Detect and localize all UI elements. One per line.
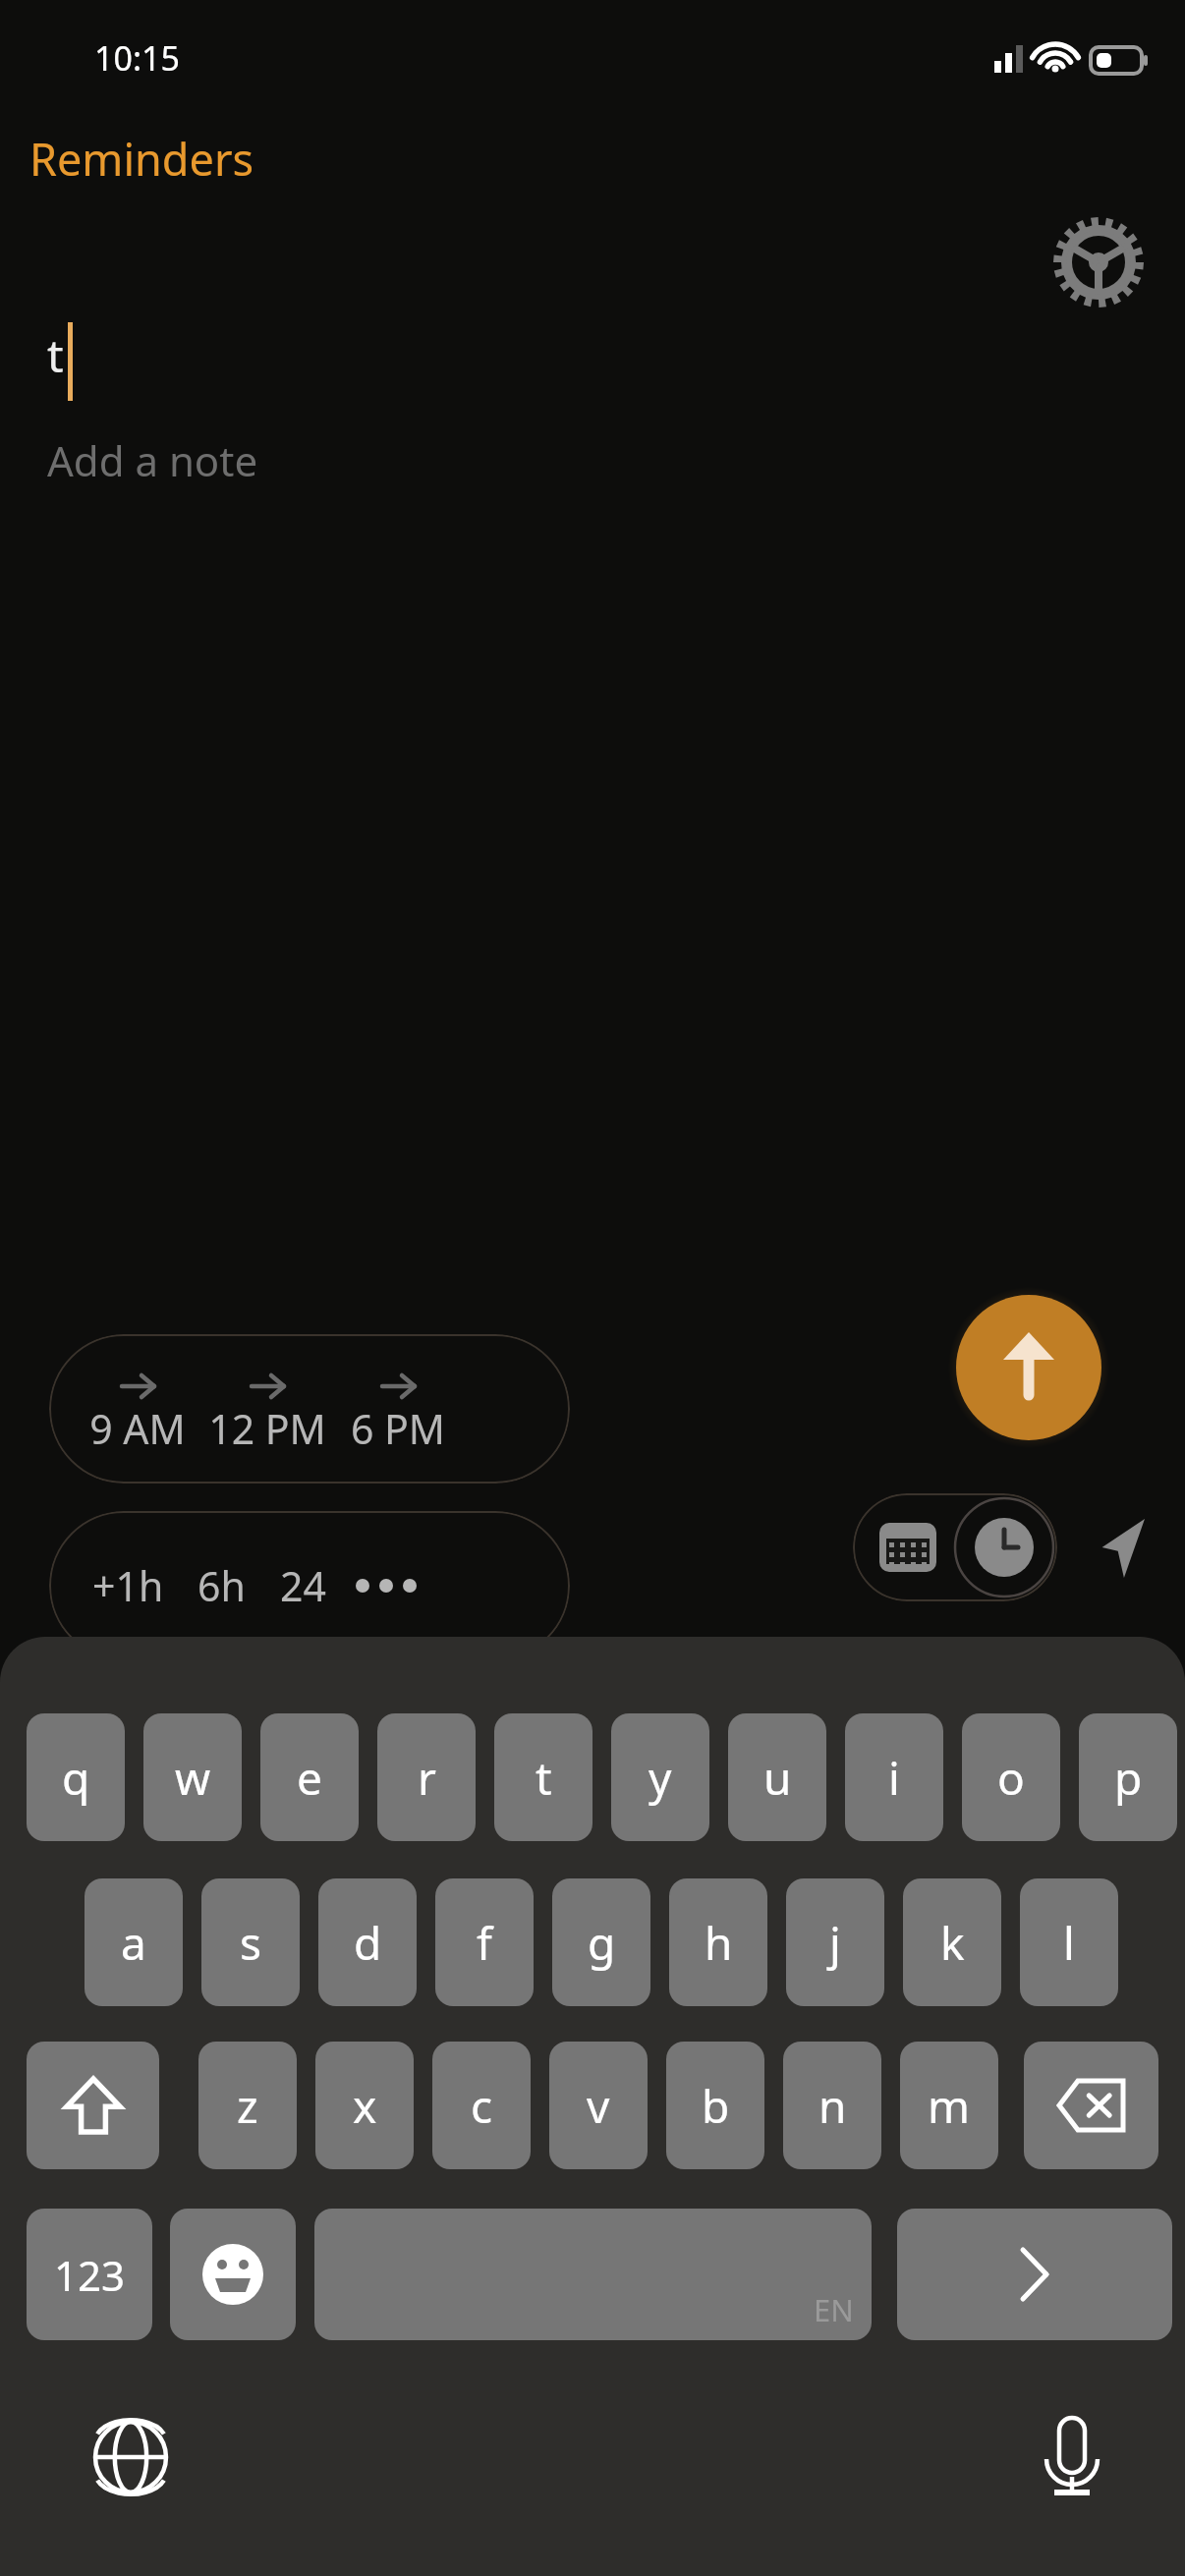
button[interactable]: 24 (249, 1511, 357, 1660)
staticText: b (702, 2075, 730, 2137)
staticText: a (121, 1912, 146, 1974)
staticText: 6h (197, 1558, 246, 1613)
button[interactable]: Enter (897, 2209, 1172, 2340)
staticText: t (47, 324, 64, 386)
staticText: c (471, 2075, 493, 2137)
button[interactable]: Reminders (29, 129, 254, 189)
staticText: q (62, 1747, 90, 1809)
staticText: v (587, 2075, 610, 2137)
button[interactable]: 9 AM (77, 1340, 198, 1478)
button[interactable]: More options (334, 1511, 442, 1660)
staticText: EN (814, 2289, 854, 2330)
button[interactable]: n (783, 2042, 881, 2169)
button[interactable]: Add a note (47, 432, 258, 488)
button[interactable]: +1h (74, 1511, 182, 1660)
staticText: g (588, 1912, 616, 1974)
button[interactable]: h (669, 1878, 767, 2006)
button[interactable]: 6 PM (337, 1340, 459, 1478)
button[interactable]: b (666, 2042, 764, 2169)
staticText: f (477, 1912, 492, 1974)
button[interactable]: 6h (167, 1511, 275, 1660)
button[interactable]: z (198, 2042, 297, 2169)
button[interactable]: s (201, 1878, 300, 2006)
button[interactable]: u (728, 1713, 826, 1841)
button[interactable]: Pick time (951, 1493, 1057, 1601)
button[interactable]: Voice input (1018, 2403, 1126, 2511)
button[interactable]: Space (314, 2209, 872, 2340)
staticText: u (763, 1747, 792, 1809)
staticText: 6 PM (337, 1401, 459, 1460)
staticText: j (829, 1912, 841, 1974)
button[interactable]: p (1079, 1713, 1177, 1841)
staticText: d (354, 1912, 382, 1974)
staticText: 12 PM (206, 1401, 328, 1460)
staticText: e (297, 1747, 322, 1809)
staticText: i (888, 1747, 900, 1809)
button[interactable]: Send (1067, 1493, 1161, 1601)
staticText: 9 AM (77, 1401, 198, 1460)
staticText: r (418, 1747, 436, 1809)
button[interactable]: y (611, 1713, 709, 1841)
button[interactable]: r (377, 1713, 476, 1841)
button[interactable]: l (1020, 1878, 1118, 2006)
staticText: y (649, 1747, 672, 1809)
button[interactable]: i (845, 1713, 943, 1841)
button[interactable]: Shift (27, 2042, 159, 2169)
staticText: z (237, 2075, 258, 2137)
button[interactable]: Pick date (859, 1493, 957, 1601)
button[interactable]: Backspace (1024, 2042, 1158, 2169)
button[interactable]: d (318, 1878, 417, 2006)
button[interactable]: j (786, 1878, 884, 2006)
staticText: 24 (280, 1558, 326, 1613)
staticText: x (353, 2075, 377, 2137)
staticText: k (940, 1912, 965, 1974)
staticText: m (928, 2075, 971, 2137)
button[interactable]: q (27, 1713, 125, 1841)
button[interactable]: v (549, 2042, 648, 2169)
button[interactable]: Save reminder (948, 1287, 1109, 1448)
button[interactable]: c (432, 2042, 531, 2169)
staticText: +1h (92, 1558, 164, 1613)
button[interactable]: Emoji (170, 2209, 296, 2340)
button[interactable]: e (260, 1713, 359, 1841)
button[interactable]: Settings (1051, 215, 1146, 309)
button[interactable]: x (315, 2042, 414, 2169)
staticText: l (1063, 1912, 1075, 1974)
button[interactable]: m (900, 2042, 998, 2169)
staticText: w (175, 1747, 211, 1809)
button[interactable]: Change language (77, 2403, 185, 2511)
button[interactable]: a (85, 1878, 183, 2006)
button[interactable]: k (903, 1878, 1001, 2006)
button[interactable]: w (143, 1713, 242, 1841)
button[interactable]: 123 (27, 2209, 152, 2340)
button[interactable]: t (494, 1713, 592, 1841)
staticText: o (997, 1747, 1025, 1809)
staticText: p (1114, 1747, 1143, 1809)
staticText: n (818, 2075, 847, 2137)
staticText: t (536, 1747, 552, 1809)
button[interactable]: o (962, 1713, 1060, 1841)
staticText: s (240, 1912, 262, 1974)
button[interactable]: 12 PM (206, 1340, 328, 1478)
button[interactable]: g (552, 1878, 650, 2006)
staticText: 123 (54, 2247, 126, 2303)
button[interactable]: f (435, 1878, 534, 2006)
staticText: 10:15 (94, 35, 180, 81)
staticText: h (705, 1912, 733, 1974)
